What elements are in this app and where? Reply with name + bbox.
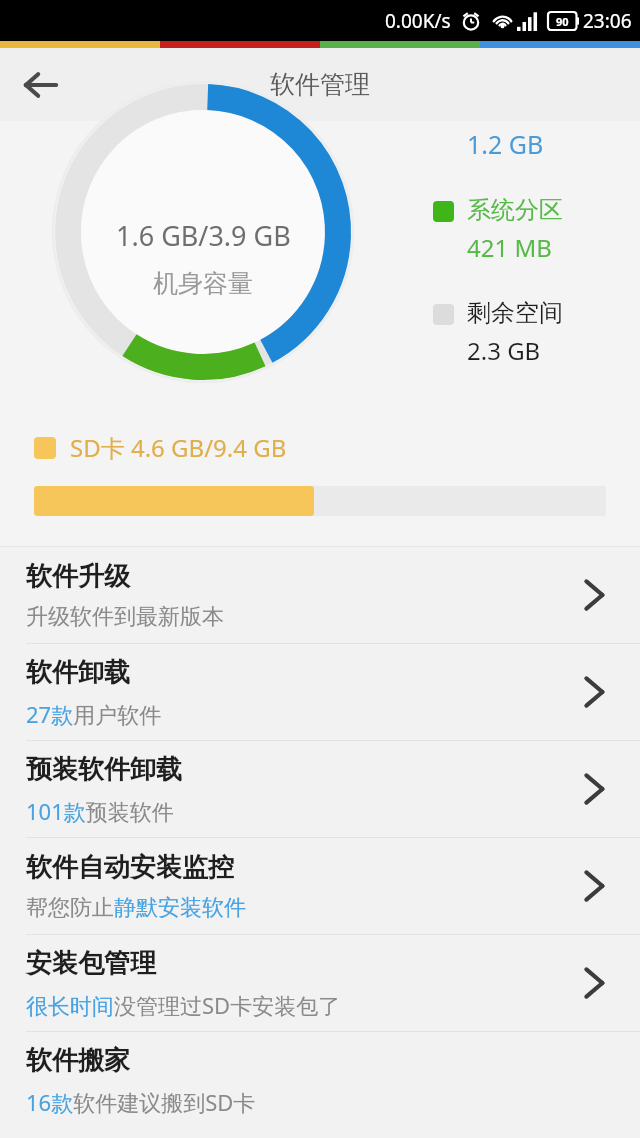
staticText: 软件管理 xyxy=(270,69,370,100)
staticText: 软件卸载 xyxy=(26,656,130,689)
staticText: 1.2 GB xyxy=(467,127,544,161)
staticText: 很长时间没管理过SD卡安装包了 xyxy=(26,990,341,1020)
staticText: 16款软件建议搬到SD卡 xyxy=(26,1087,256,1117)
button[interactable]: Back xyxy=(10,54,72,116)
staticText: SD卡 4.6 GB/9.4 GB xyxy=(70,431,287,464)
staticText: 0.00K/s xyxy=(385,8,451,34)
staticText: 27款用户软件 xyxy=(26,699,162,729)
staticText: 软件自动安装监控 xyxy=(26,851,234,884)
button[interactable]: 软件卸载 xyxy=(0,644,640,740)
button[interactable]: 软件搬家 xyxy=(0,1032,640,1128)
staticText: 升级软件到最新版本 xyxy=(26,603,224,631)
staticText: 系统分区 xyxy=(467,195,563,225)
staticText: 安装包管理 xyxy=(26,947,156,980)
button[interactable]: 软件自动安装监控 xyxy=(0,838,640,934)
staticText: 剩余空间 xyxy=(467,298,563,328)
staticText: 2.3 GB xyxy=(467,334,541,367)
staticText: 预装软件卸载 xyxy=(26,753,182,786)
staticText: 90 xyxy=(556,14,569,29)
staticText: 机身容量 xyxy=(153,268,253,299)
staticText: 软件搬家 xyxy=(26,1044,130,1077)
staticText: 软件升级 xyxy=(26,560,130,593)
button[interactable]: 预装软件卸载 xyxy=(0,741,640,837)
staticText: 帮您防止静默安装软件 xyxy=(26,894,246,922)
staticText: 101款预装软件 xyxy=(26,796,174,826)
button[interactable]: 安装包管理 xyxy=(0,935,640,1031)
staticText: 421 MB xyxy=(467,231,552,264)
staticText: 23:06 xyxy=(583,8,632,34)
button[interactable]: 软件升级 xyxy=(0,547,640,643)
staticText: 1.6 GB/3.9 GB xyxy=(116,217,291,254)
